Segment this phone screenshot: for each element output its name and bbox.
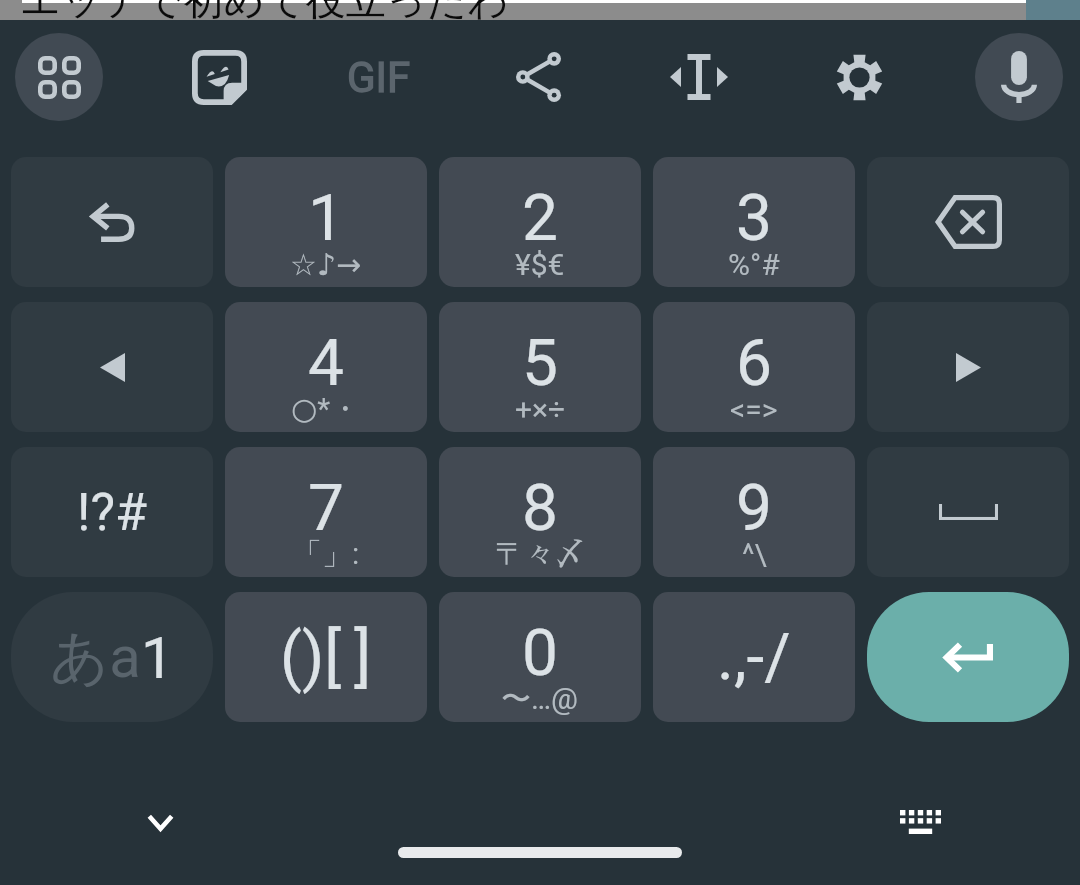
button[interactable]: Move cursor left <box>11 302 213 432</box>
button[interactable]: Undo <box>11 157 213 287</box>
button[interactable]: Hide keyboard <box>116 778 204 866</box>
staticText: 3 <box>736 181 772 256</box>
staticText: 〒々〆 <box>495 535 585 573</box>
button[interactable]: Settings <box>815 33 903 121</box>
button[interactable]: 9 <box>653 447 855 577</box>
button[interactable]: Text editing <box>655 33 743 121</box>
button[interactable]: ()[ ] <box>225 592 427 722</box>
button[interactable]: .,-/ <box>653 592 855 722</box>
staticText: 1 <box>141 624 174 692</box>
staticText: GIF <box>347 53 411 102</box>
staticText: +×÷ <box>515 392 566 427</box>
button[interactable]: あa <box>11 592 213 722</box>
staticText: ()[ ] <box>280 620 372 695</box>
staticText: <=> <box>730 392 778 427</box>
button[interactable]: Share <box>494 33 582 121</box>
staticText: 0 <box>522 616 558 691</box>
staticText: あa <box>50 621 141 694</box>
button[interactable]: 7 <box>225 447 427 577</box>
staticText: 7 <box>308 471 344 546</box>
button[interactable]: Stickers <box>175 33 263 121</box>
button[interactable]: Apps <box>15 33 103 121</box>
staticText: 2 <box>522 181 558 256</box>
button[interactable]: 8 <box>439 447 641 577</box>
staticText: ^\ <box>742 537 767 572</box>
staticText: 9 <box>736 471 772 546</box>
button[interactable]: 0 <box>439 592 641 722</box>
button[interactable]: 3 <box>653 157 855 287</box>
button[interactable]: Space <box>867 447 1069 577</box>
staticText: !?# <box>77 482 148 543</box>
button[interactable]: 5 <box>439 302 641 432</box>
staticText: 6 <box>736 326 772 401</box>
button[interactable]: Backspace <box>867 157 1069 287</box>
staticText: 8 <box>522 471 558 546</box>
staticText: %°# <box>728 247 780 282</box>
staticText: エッテで初めて役立ったわ <box>20 0 509 25</box>
button[interactable]: !?# <box>11 447 213 577</box>
button[interactable]: 2 <box>439 157 641 287</box>
staticText: ☆♪→ <box>290 247 362 282</box>
button[interactable]: Switch keyboard <box>876 778 964 866</box>
staticText: 1 <box>308 181 344 256</box>
button[interactable]: Move cursor right <box>867 302 1069 432</box>
staticText: .,-/ <box>717 620 791 695</box>
staticText: 〜…@ <box>501 680 579 718</box>
button[interactable]: 6 <box>653 302 855 432</box>
button[interactable]: Voice input <box>975 33 1063 121</box>
button[interactable]: 4 <box>225 302 427 432</box>
button[interactable]: 1 <box>225 157 427 287</box>
button[interactable]: GIF <box>335 33 423 121</box>
staticText: ¥$€ <box>515 247 565 282</box>
staticText: ○*・ <box>291 390 361 428</box>
staticText: 5 <box>522 326 558 401</box>
button[interactable]: Enter <box>867 592 1069 722</box>
staticText: 4 <box>308 326 344 401</box>
staticText: 「」: <box>292 535 360 573</box>
